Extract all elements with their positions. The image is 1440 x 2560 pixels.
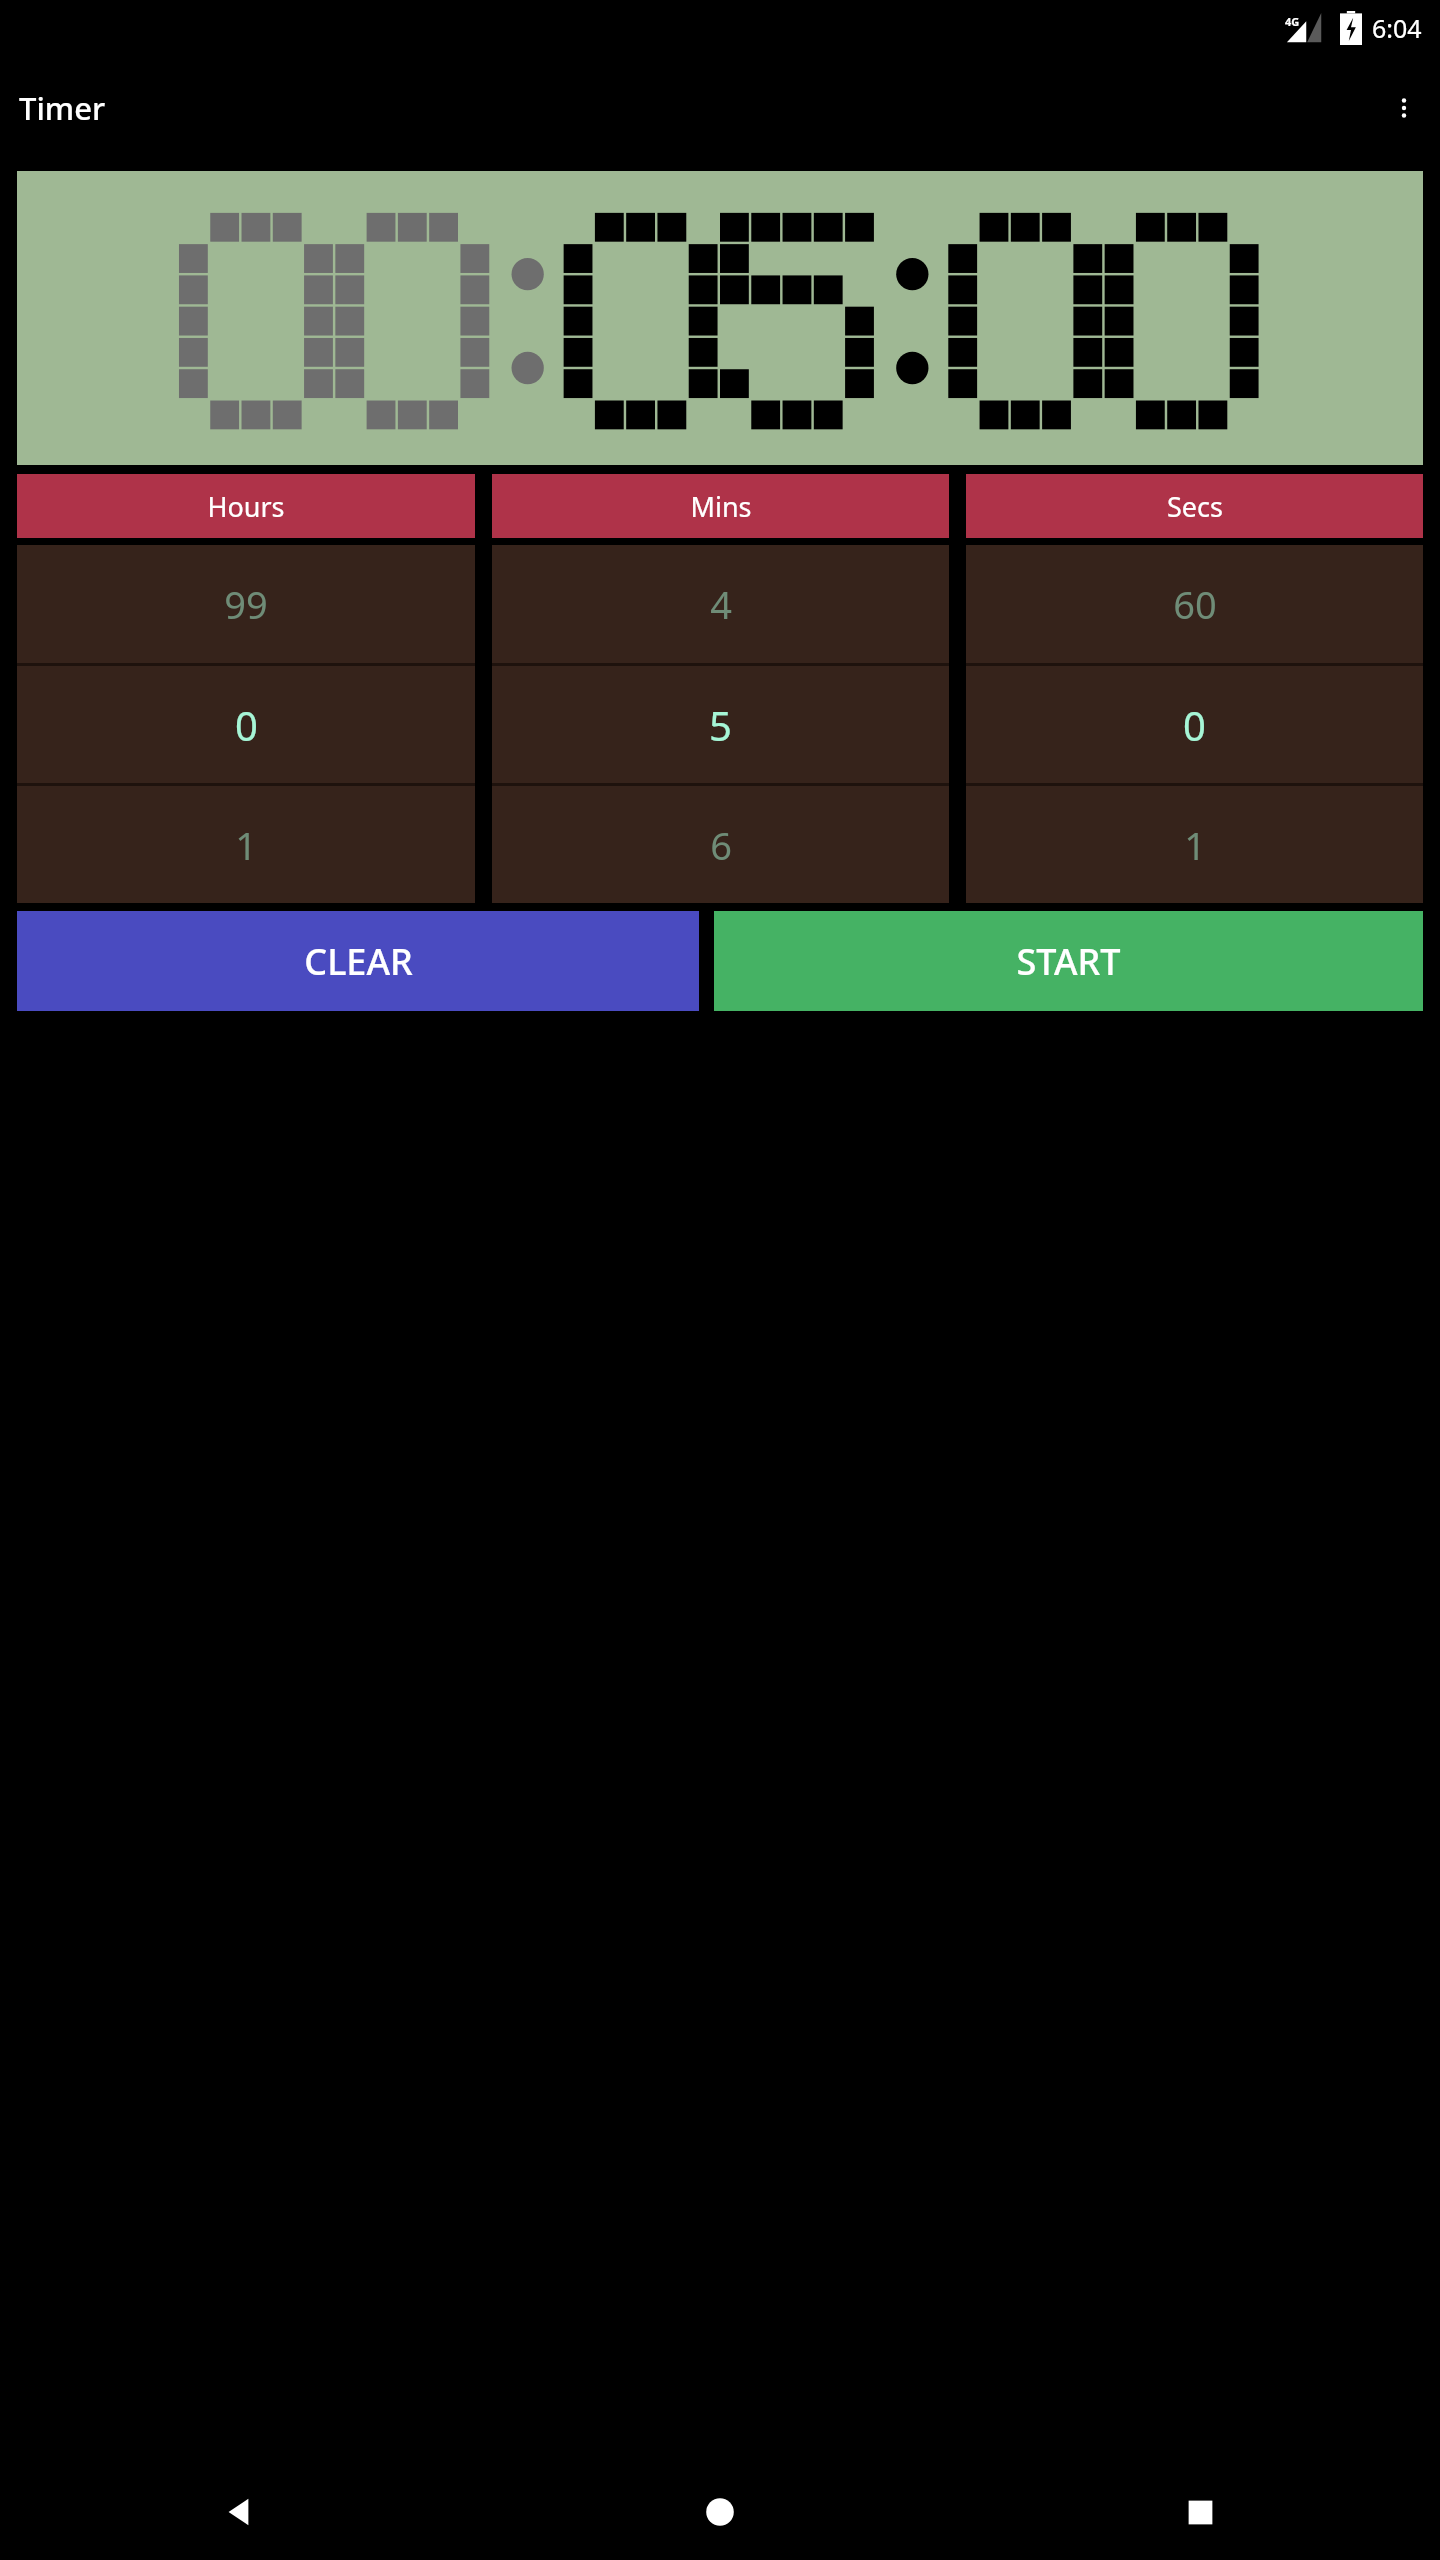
button[interactable]: 0 [17,666,475,783]
button[interactable]: 1 [966,786,1423,903]
staticText: Timer [19,87,106,129]
staticText: 6:04 [1372,11,1422,45]
staticText: 60 [1173,578,1217,630]
button[interactable]: 60 [966,545,1423,663]
button[interactable]: 1 [17,786,475,903]
button[interactable]: Secs [966,474,1423,538]
button[interactable]: Back [0,2464,480,2560]
button[interactable]: More options [1376,80,1432,136]
button[interactable]: CLEAR [17,911,699,1011]
staticText: 0 [235,698,258,752]
staticText: 6 [710,819,732,871]
button[interactable]: Mins [492,474,949,538]
staticText: 1 [235,819,257,871]
staticText: 0 [1183,698,1206,752]
button[interactable]: 4 [492,545,949,663]
staticText: Secs [1167,488,1223,525]
staticText: Hours [207,488,285,525]
button[interactable]: 5 [492,666,949,783]
button[interactable]: Hours [17,474,475,538]
staticText: 1 [1184,819,1206,871]
button[interactable]: START [714,911,1423,1011]
staticText: Mins [690,488,752,525]
staticText: 4 [710,578,732,630]
button[interactable]: 0 [966,666,1423,783]
staticText: 4G [1285,14,1300,29]
staticText: CLEAR [304,937,413,986]
staticText: 99 [224,578,268,630]
button[interactable]: Home [480,2464,960,2560]
button[interactable]: Recent apps [960,2464,1440,2560]
button[interactable]: 99 [17,545,475,663]
staticText: START [1016,937,1121,986]
staticText: 5 [709,698,732,752]
button[interactable]: 6 [492,786,949,903]
